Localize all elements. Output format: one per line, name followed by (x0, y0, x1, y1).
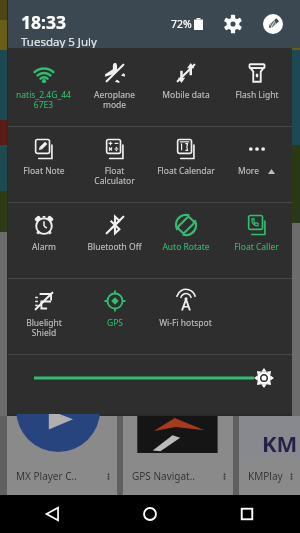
button[interactable]: Edit tiles (260, 11, 286, 37)
staticText: GPS (107, 317, 123, 329)
button[interactable]: KMP (239, 416, 300, 495)
staticText: Bluetooth Off (87, 241, 142, 253)
button[interactable]: Float Caller (221, 203, 292, 278)
staticText: More (238, 165, 259, 177)
staticText: Float Note (23, 165, 65, 177)
button[interactable]: GPS Navigat.. (123, 416, 233, 495)
staticText: KMPlaye (248, 469, 287, 483)
button[interactable]: Bluetooth Off (79, 203, 150, 278)
button[interactable]: Float Calendar (150, 127, 221, 202)
staticText: Aeroplane mode (94, 89, 135, 110)
button[interactable]: Brightness (8, 355, 292, 414)
staticText: GPS Navigat.. (132, 469, 220, 483)
button[interactable]: Bluelight Shield (8, 279, 79, 354)
staticText: 18:33 (21, 10, 66, 34)
staticText: Alarm (32, 241, 56, 253)
button[interactable]: Settings (221, 12, 245, 36)
staticText: Auto Rotate (162, 241, 210, 253)
button[interactable]: Aeroplane mode (79, 48, 150, 126)
staticText: Bluelight Shield (26, 317, 62, 338)
button[interactable]: More (221, 127, 292, 202)
staticText: Wi-Fi hotspot (159, 317, 212, 329)
staticText: Float Calculator (94, 165, 135, 186)
staticText: Mobile data (162, 89, 210, 101)
staticText: 72% (171, 17, 192, 31)
button[interactable]: MX Player C.. (7, 416, 117, 495)
staticText: Tuesday 5 July (21, 34, 97, 48)
staticText: Flash Light (235, 89, 279, 101)
button[interactable]: Alarm (8, 203, 79, 278)
staticText: Float Caller (234, 241, 279, 253)
button[interactable]: Back (36, 497, 70, 531)
staticText: natis_2.4G_44 67E3 (16, 89, 71, 110)
button[interactable]: Float Note (8, 127, 79, 202)
button[interactable]: Float Calculator (79, 127, 150, 202)
button[interactable]: natis_2.4G_44 67E3 (8, 48, 79, 126)
button[interactable]: Recent apps (230, 497, 264, 531)
button[interactable]: GPS (79, 279, 150, 354)
staticText: Float Calendar (157, 165, 215, 177)
button[interactable]: Auto Rotate (150, 203, 221, 278)
staticText: MX Player C.. (16, 469, 104, 483)
button[interactable]: Mobile data (150, 48, 221, 126)
staticText: KMP (262, 428, 300, 458)
button[interactable]: Flash Light (221, 48, 292, 126)
button[interactable]: Home (133, 497, 167, 531)
button[interactable]: Wi-Fi hotspot (150, 279, 221, 354)
